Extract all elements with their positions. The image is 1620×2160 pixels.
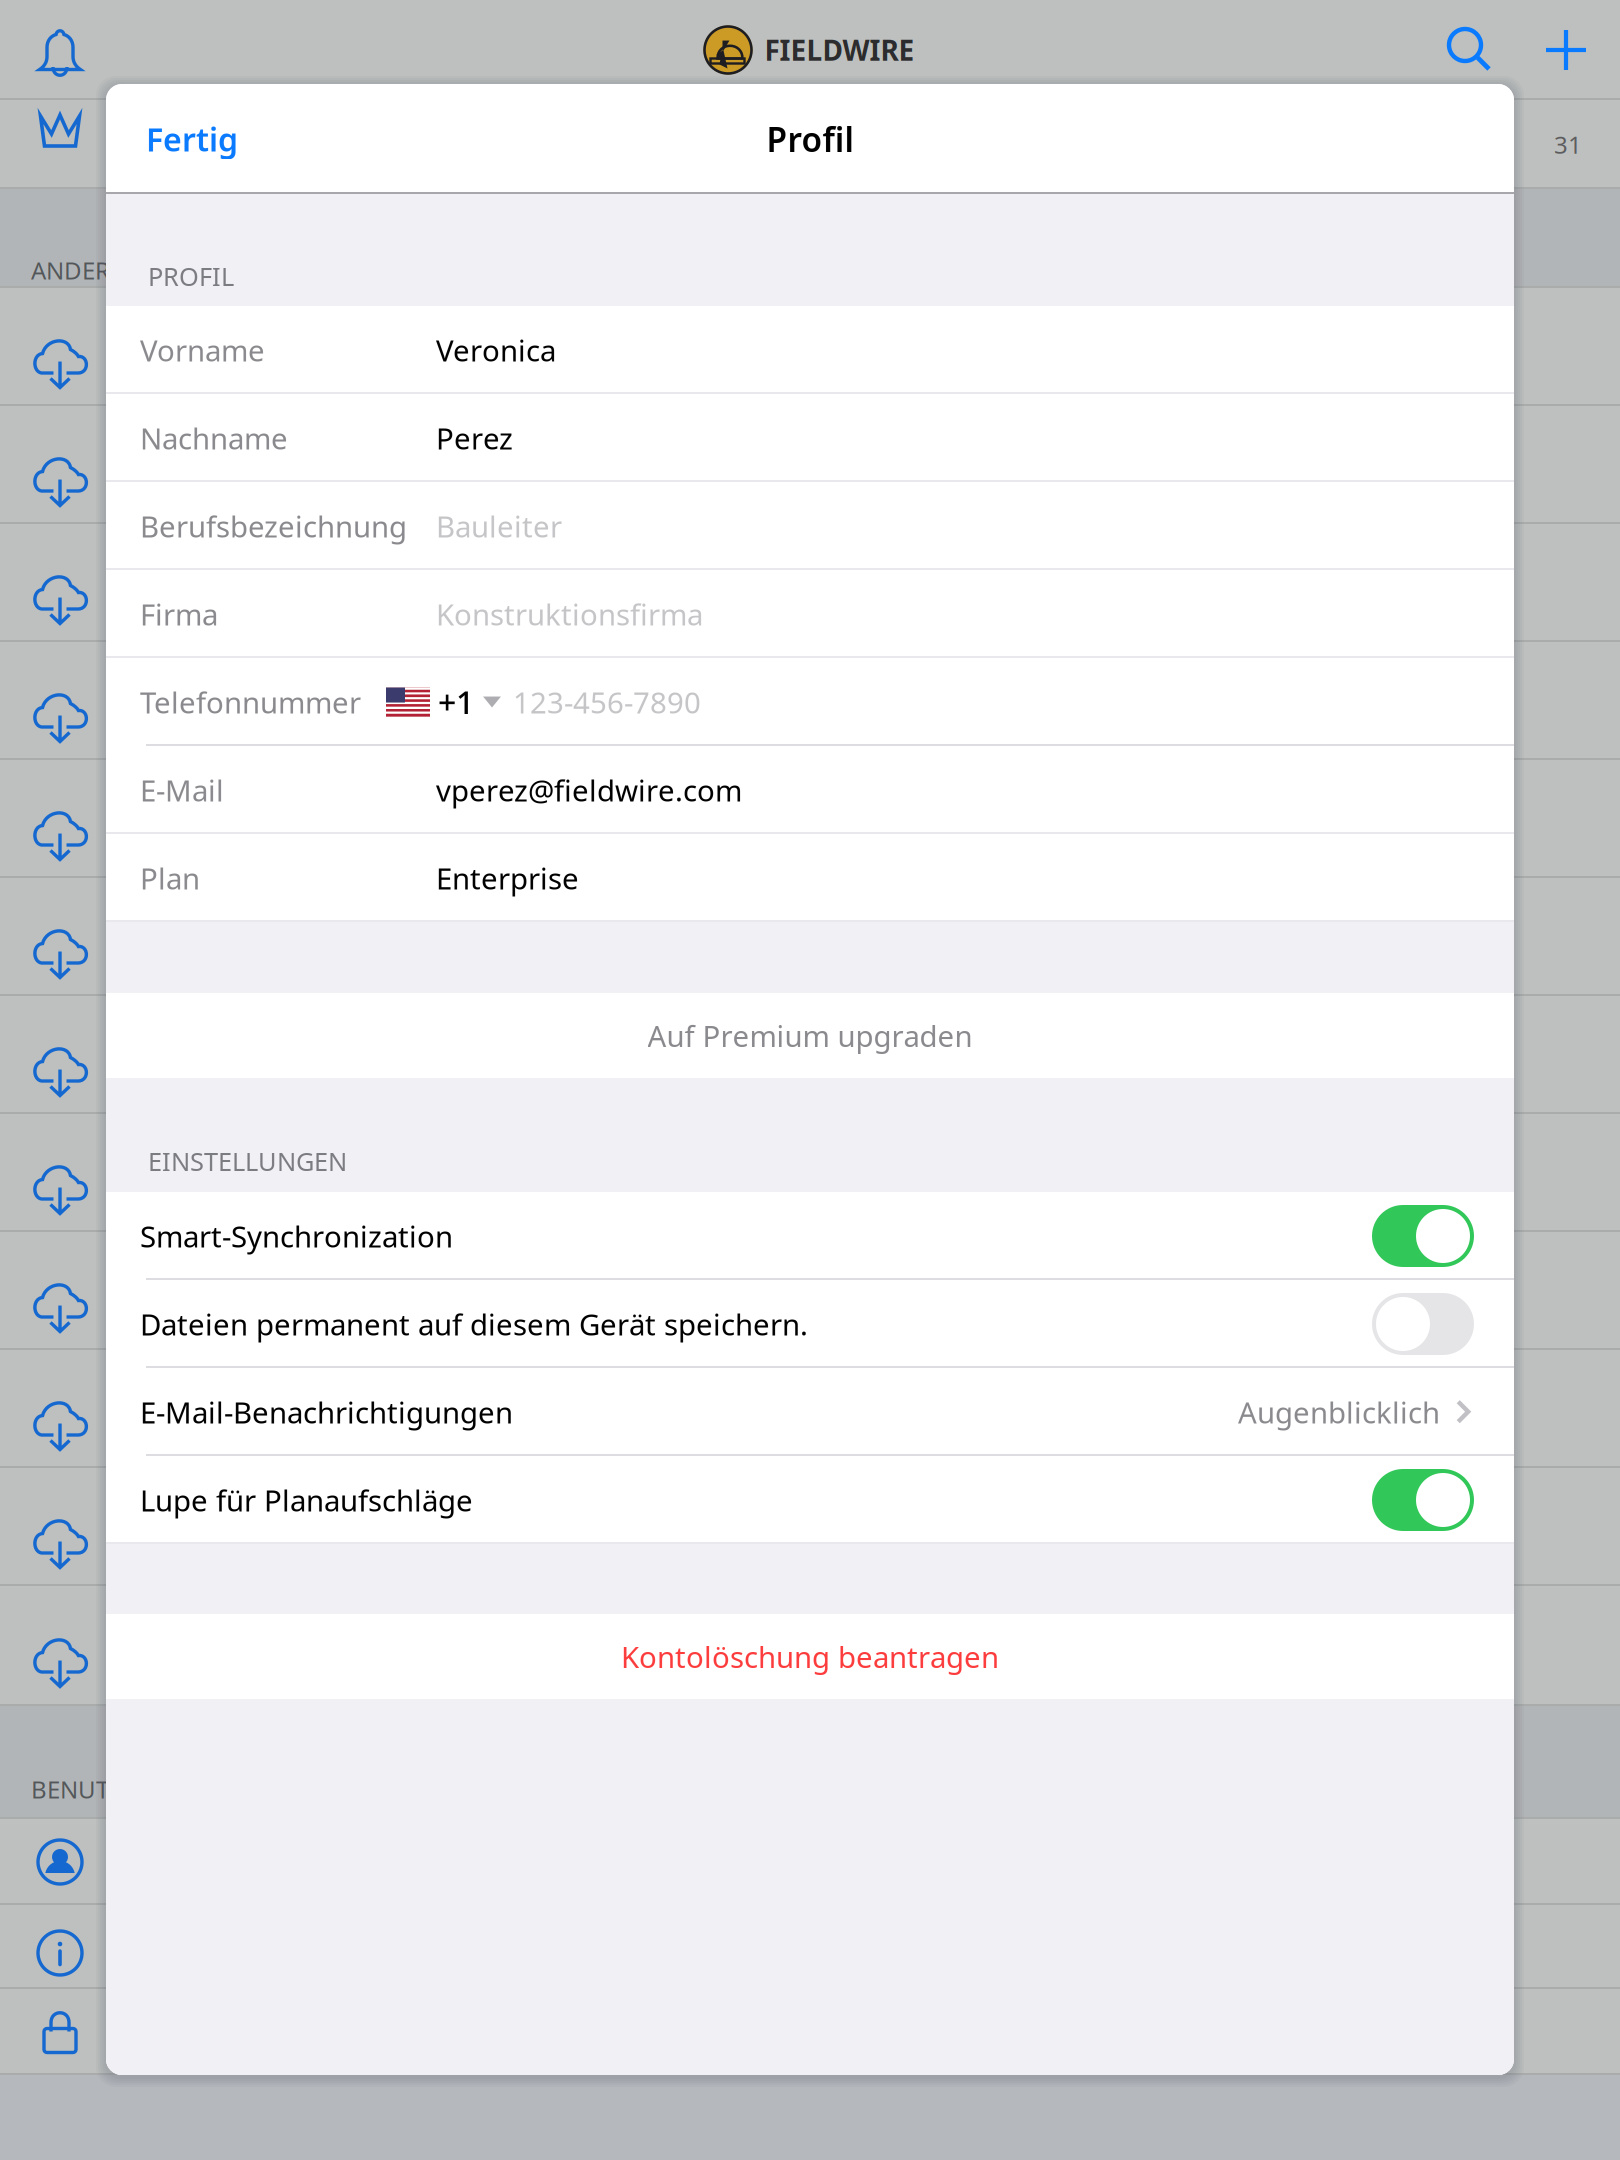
- staticText: Konstruktionsfirma: [436, 594, 703, 633]
- staticText: Profil: [766, 117, 853, 161]
- staticText: 31: [1554, 129, 1582, 160]
- staticText: Auf Premium upgraden: [647, 1016, 972, 1055]
- button[interactable]: Auf Premium upgraden: [106, 993, 1514, 1078]
- staticText: 123-456-7890: [513, 682, 701, 721]
- staticText: FIELDWIRE: [764, 31, 914, 69]
- button[interactable]: Notifications: [0, 0, 120, 100]
- staticText: Enterprise: [436, 858, 579, 897]
- staticText: vperez@fieldwire.com: [436, 770, 742, 809]
- button[interactable]: E-Mail: [106, 746, 1514, 834]
- staticText: PROFIL: [148, 259, 234, 293]
- button[interactable]: Firma: [106, 570, 1514, 658]
- staticText: Plan: [140, 858, 200, 897]
- staticText: Dateien permanent auf diesem Gerät speic…: [140, 1304, 808, 1343]
- button[interactable]: Telefonnummer: [106, 658, 1514, 746]
- staticText: Perez: [436, 418, 513, 457]
- button[interactable]: Add: [1524, 8, 1608, 92]
- staticText: E-Mail: [140, 770, 224, 809]
- staticText: EINSTELLUNGEN: [148, 1144, 347, 1178]
- staticText: +1: [438, 681, 474, 723]
- button[interactable]: Plan: [106, 834, 1514, 922]
- button[interactable]: Berufsbezeichnung: [106, 482, 1514, 570]
- staticText: Firma: [140, 594, 218, 633]
- staticText: Kontolöschung beantragen: [621, 1637, 999, 1676]
- staticText: Vorname: [140, 330, 265, 369]
- staticText: Augenblicklich: [1238, 1392, 1440, 1431]
- staticText: E-Mail-Benachrichtigungen: [140, 1392, 513, 1431]
- staticText: Fertig: [146, 118, 238, 160]
- staticText: Nachname: [140, 418, 288, 457]
- staticText: Bauleiter: [436, 506, 562, 545]
- staticText: Smart-Synchronization: [140, 1216, 453, 1255]
- button[interactable]: Fertig: [106, 84, 262, 194]
- button[interactable]: E-Mail-Benachrichtigungen: [106, 1368, 1514, 1456]
- button[interactable]: Kontolöschung beantragen: [106, 1614, 1514, 1699]
- staticText: ANDERE: [31, 254, 123, 286]
- button[interactable]: Smart-Synchronization: [106, 1192, 1514, 1280]
- staticText: Berufsbezeichnung: [140, 506, 407, 545]
- staticText: Veronica: [436, 330, 556, 369]
- button[interactable]: Search: [1428, 8, 1512, 92]
- staticText: Telefonnummer: [140, 682, 361, 721]
- button[interactable]: Dateien permanent auf diesem Gerät speic…: [106, 1280, 1514, 1368]
- button[interactable]: Vorname: [106, 306, 1514, 394]
- staticText: Lupe für Planaufschläge: [140, 1480, 473, 1519]
- button[interactable]: Nachname: [106, 394, 1514, 482]
- staticText: BENUTZER: [31, 1773, 151, 1805]
- button[interactable]: Lupe für Planaufschläge: [106, 1456, 1514, 1544]
